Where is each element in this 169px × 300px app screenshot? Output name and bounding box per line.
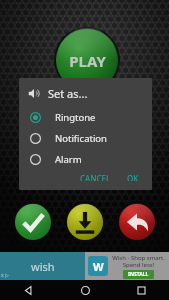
button[interactable]: Alarm (19, 149, 152, 170)
button[interactable]: wish (0, 252, 169, 280)
button[interactable]: OK (122, 170, 144, 184)
staticText: CANCEL (80, 173, 111, 181)
staticText: Wish - Shop smart. Spend less! (110, 254, 167, 269)
staticText: OK (127, 173, 139, 181)
button[interactable]: Back (116, 201, 158, 243)
button[interactable]: CANCEL (75, 170, 116, 184)
button[interactable]: Home (57, 280, 113, 300)
button[interactable]: Download (64, 201, 106, 243)
staticText: Notification (55, 132, 107, 145)
staticText: wish (31, 259, 55, 274)
staticText: W (93, 259, 104, 274)
staticText: Set as... (48, 86, 88, 101)
staticText: INSTALL (128, 271, 149, 278)
button[interactable]: Play (54, 27, 120, 93)
staticText: Alarm (55, 153, 82, 166)
staticText: Ringtone (55, 111, 96, 124)
button[interactable]: Notification (19, 128, 152, 149)
button[interactable]: INSTALL (128, 271, 149, 278)
staticText: PLAY (69, 51, 106, 71)
button[interactable]: Accept (12, 201, 54, 243)
button[interactable]: Recents (113, 280, 169, 300)
button[interactable]: Ringtone (19, 107, 152, 128)
button[interactable]: Back (0, 280, 57, 300)
staticText: x ▷ (1, 272, 9, 279)
